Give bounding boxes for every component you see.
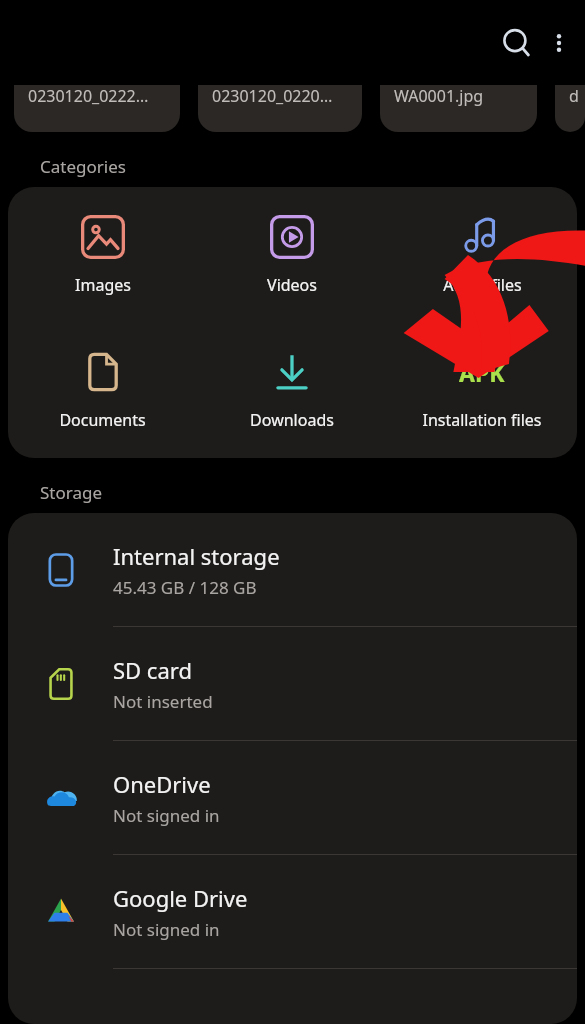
button[interactable]: Videos <box>197 187 387 322</box>
staticText: dm <box>569 85 571 107</box>
button[interactable]: OneDrive <box>8 741 577 854</box>
staticText: Documents <box>59 409 146 431</box>
staticText: 0230120_0220… <box>212 85 333 107</box>
staticText: Categories <box>40 155 126 178</box>
staticText: 45.43 GB / 128 GB <box>113 576 257 599</box>
button[interactable]: Images <box>8 187 197 322</box>
staticText: Not signed in <box>113 918 220 941</box>
button[interactable]: Search <box>489 15 545 71</box>
staticText: OneDrive <box>113 769 211 799</box>
staticText: WA0001.jpg <box>394 85 484 107</box>
button[interactable]: More options <box>535 19 583 67</box>
staticText: 0230120_0222… <box>28 85 149 107</box>
button[interactable]: Downloads <box>197 322 387 458</box>
staticText: SD card <box>113 655 192 685</box>
button[interactable]: 0230120_0222… <box>14 85 180 132</box>
staticText: Images <box>75 274 131 296</box>
button[interactable]: Audio files <box>387 187 577 322</box>
button[interactable]: Google Drive <box>8 855 577 968</box>
staticText: Installation files <box>422 409 542 431</box>
staticText: Audio files <box>443 274 522 296</box>
staticText: APK <box>459 357 505 388</box>
button[interactable]: SD card <box>8 627 577 740</box>
staticText: Internal storage <box>113 541 280 571</box>
staticText: Videos <box>267 274 317 296</box>
button[interactable]: Internal storage <box>8 513 577 626</box>
button[interactable]: 0230120_0220… <box>198 85 362 132</box>
staticText: Not signed in <box>113 804 220 827</box>
staticText: Not inserted <box>113 690 213 713</box>
button[interactable]: APK <box>387 322 577 458</box>
button[interactable]: Documents <box>8 322 197 458</box>
button[interactable]: dm <box>555 85 585 132</box>
staticText: Downloads <box>250 409 334 431</box>
staticText: Google Drive <box>113 883 248 913</box>
staticText: Storage <box>40 481 103 504</box>
button[interactable]: WA0001.jpg <box>380 85 537 132</box>
